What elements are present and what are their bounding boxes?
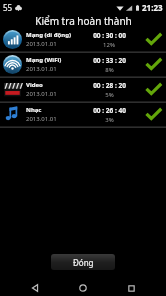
button[interactable]: Home: [70, 280, 96, 296]
staticText: 2013.01.01: [26, 115, 57, 123]
staticText: 00 : 28 : 20: [93, 81, 126, 90]
staticText: 12%: [103, 41, 115, 49]
button[interactable]: Đóng: [51, 254, 115, 270]
staticText: 00 : 26 : 40: [93, 106, 126, 115]
staticText: 21:23: [142, 2, 163, 13]
staticText: Mạng (WiFi): [26, 56, 62, 64]
staticText: 2013.01.01: [26, 90, 57, 98]
staticText: 55: [3, 2, 13, 13]
staticText: 2013.01.01: [26, 65, 57, 73]
staticText: 00 : 30 : 00: [93, 31, 126, 40]
staticText: 00 : 33 : 20: [93, 56, 126, 65]
staticText: Video: [26, 81, 43, 89]
staticText: 5%: [105, 91, 114, 99]
staticText: Nhạc: [26, 106, 42, 114]
button[interactable]: Back: [22, 280, 48, 296]
button[interactable]: Mạng (di động): [0, 28, 166, 51]
staticText: Đóng: [73, 257, 94, 268]
staticText: 2013.01.01: [26, 40, 57, 48]
button[interactable]: Recent apps: [118, 280, 144, 296]
staticText: 3%: [105, 116, 114, 124]
staticText: Kiểm tra hoàn thành: [35, 14, 132, 28]
button[interactable]: Video: [0, 78, 166, 101]
staticText: 8%: [105, 66, 114, 74]
staticText: Mạng (di động): [26, 31, 72, 39]
button[interactable]: Mạng (WiFi): [0, 53, 166, 76]
button[interactable]: Nhạc: [0, 103, 166, 126]
